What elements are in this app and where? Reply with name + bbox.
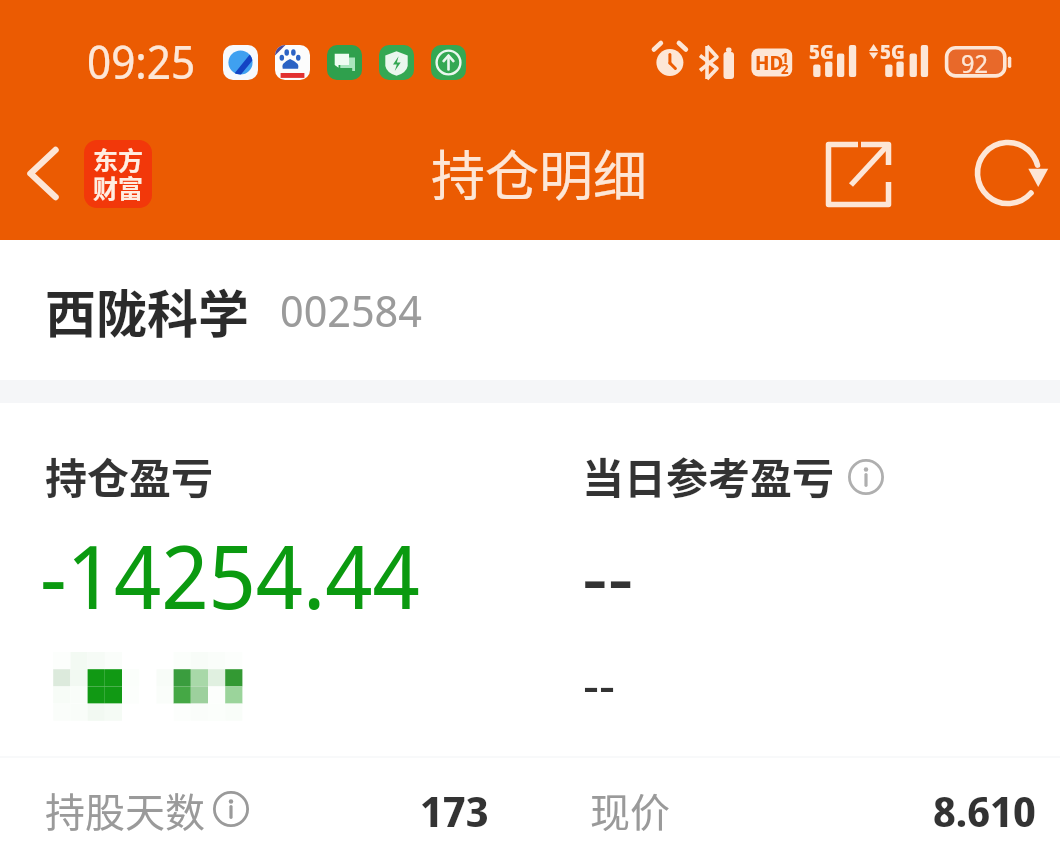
staticText: 2 [781,59,789,78]
staticText: 1 [781,48,789,67]
staticText: 8.610 [933,782,1036,839]
staticText: 92 [961,46,988,80]
button[interactable]: 当日参考盈亏 [530,403,1060,756]
button[interactable]: Back [8,134,88,214]
button[interactable]: About today's reference profit [840,451,892,503]
staticText: 西陇科学 [45,274,250,348]
button[interactable]: Refresh [961,127,1054,220]
staticText: -- [583,647,616,719]
staticText: 5G [809,38,834,65]
staticText: 现价 [590,781,670,839]
staticText: -- [582,517,634,633]
staticText: 持股天数 [45,781,205,839]
button[interactable]: 西陇科学 [0,241,1060,380]
button[interactable]: East Money [84,140,152,208]
staticText: 002584 [280,280,422,340]
staticText: 5G [880,38,905,65]
staticText: HD [755,49,784,76]
button[interactable]: 持仓盈亏 [0,403,530,756]
staticText: 持仓明细 [431,133,647,211]
staticText: 东方 财富 [93,141,144,206]
button[interactable]: 现价 [530,758,1060,864]
staticText: 当日参考盈亏 [582,445,835,506]
button[interactable]: Share [814,130,907,223]
staticText: 09:25 [87,31,196,92]
staticText: -14254.44 [40,515,420,635]
staticText: 173 [420,782,489,839]
staticText: 持仓盈亏 [45,445,214,506]
button[interactable]: About holding days [205,783,257,835]
button[interactable]: 持股天数 [0,758,530,864]
